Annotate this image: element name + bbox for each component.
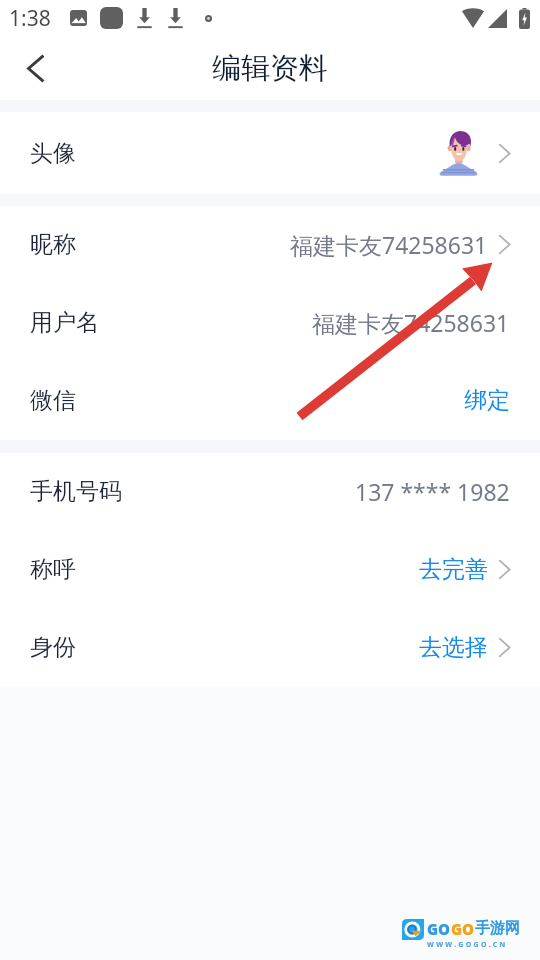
staticText: 微信 [30,386,76,415]
staticText: 编辑资料 [212,50,328,87]
staticText: 用户名 [30,308,99,337]
button[interactable]: 头像 [0,112,540,194]
button[interactable]: 昵称 [0,206,540,284]
staticText: GO [427,919,451,939]
staticText: GO [451,919,475,939]
staticText: 手机号码 [30,477,122,506]
button[interactable]: 身份 [0,609,540,687]
staticText: 昵称 [30,230,76,259]
staticText: 绑定 [464,386,510,415]
staticText: 福建卡友74258631 [312,307,510,338]
staticText: 手游网 [475,919,520,938]
staticText: 头像 [30,139,76,168]
button[interactable]: 手机号码 [0,453,540,531]
staticText: 去选择 [419,633,488,662]
button[interactable]: 微信 [0,362,540,440]
staticText: 1:38 [9,4,51,33]
staticText: 称呼 [30,555,76,584]
staticText: 137 **** 1982 [355,476,510,507]
staticText: 福建卡友74258631 [290,229,488,260]
staticText: 身份 [30,633,76,662]
staticText: 去完善 [419,555,488,584]
button[interactable]: 用户名 [0,284,540,362]
staticText: WWW.GOGO.CN [427,940,508,950]
button[interactable]: Back [13,46,57,90]
button[interactable]: 称呼 [0,531,540,609]
